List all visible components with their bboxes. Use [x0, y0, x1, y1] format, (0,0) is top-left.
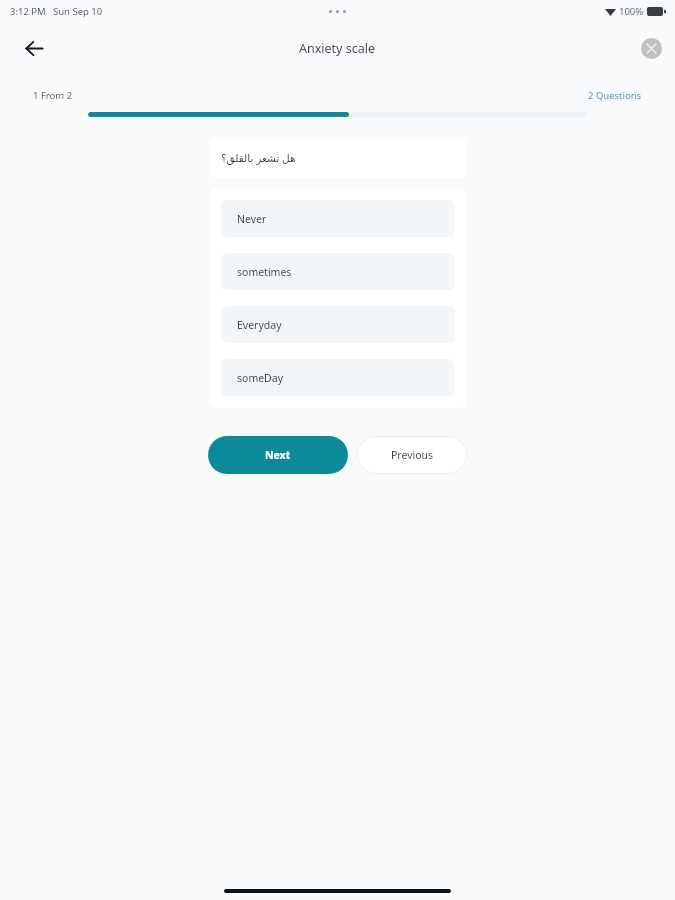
staticText: Anxiety scale [299, 40, 376, 57]
button[interactable]: Previous [357, 436, 467, 474]
button[interactable]: Close [641, 38, 662, 59]
staticText: Sun Sep 10 [53, 5, 103, 18]
staticText: 100% [619, 5, 644, 18]
staticText: Everyday [237, 318, 282, 332]
button[interactable]: Next [208, 436, 348, 474]
button[interactable]: someDay [221, 359, 455, 396]
staticText: Previous [391, 448, 434, 462]
button[interactable]: sometimes [221, 253, 455, 290]
button[interactable]: Back [14, 28, 54, 68]
staticText: 2 Questions [588, 89, 642, 102]
staticText: Next [265, 448, 291, 462]
staticText: Never [237, 212, 267, 226]
staticText: 3:12 PM [10, 5, 46, 18]
button[interactable]: Never [221, 200, 455, 237]
staticText: 1 From 2 [33, 89, 73, 102]
staticText: هل تشعر بالقلق؟ [221, 151, 296, 165]
button[interactable]: Everyday [221, 306, 455, 343]
staticText: someDay [237, 371, 284, 385]
staticText: sometimes [237, 265, 292, 279]
